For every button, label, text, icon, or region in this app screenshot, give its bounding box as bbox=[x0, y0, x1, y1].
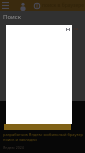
staticText: Поиск bbox=[3, 13, 21, 21]
button[interactable]: Globe bbox=[31, 0, 42, 11]
button[interactable]: Menu bbox=[0, 0, 11, 11]
button[interactable]: Account bbox=[17, 0, 28, 11]
staticText: поиск и закладки bbox=[3, 137, 37, 142]
staticText: Яндекс 2024 bbox=[3, 145, 24, 150]
staticText: разработчик Яндекс мобильный браузер bbox=[3, 132, 84, 137]
staticText: ru bbox=[74, 26, 79, 31]
button[interactable]: Поиск bbox=[0, 11, 85, 25]
